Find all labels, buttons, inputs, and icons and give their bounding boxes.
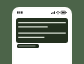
button[interactable]: Message — [16, 18, 68, 43]
button[interactable] — [17, 44, 39, 48]
